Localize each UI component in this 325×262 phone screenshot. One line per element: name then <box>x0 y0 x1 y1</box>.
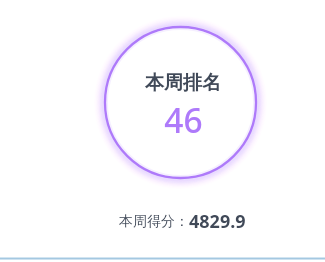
staticText: 本周得分： <box>119 213 189 231</box>
staticText: 46 <box>164 97 203 139</box>
staticText: 本周排名 <box>145 71 221 95</box>
button[interactable]: 本周排名 46 <box>105 27 256 178</box>
staticText: 4829.9 <box>189 209 246 234</box>
